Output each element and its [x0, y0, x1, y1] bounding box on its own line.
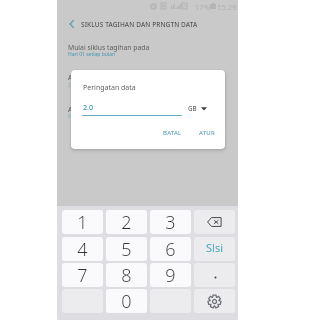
staticText: 9 [165, 263, 176, 287]
button[interactable]: Settings [194, 289, 235, 313]
button[interactable]: ATUR [195, 126, 219, 140]
staticText: Atur peringatan data [68, 73, 135, 82]
staticText: 8 [121, 263, 132, 287]
staticText: 0 [121, 289, 132, 313]
staticText: Hari 01 setiap bulan [68, 51, 116, 58]
staticText: 7 [77, 263, 88, 287]
staticText: 2 [121, 210, 132, 234]
staticText: 3 [165, 210, 176, 234]
button[interactable]: Backspace [194, 210, 235, 234]
staticText: 6 [165, 237, 176, 261]
button[interactable]: 9 [150, 263, 191, 287]
staticText: 2,00 GB [68, 82, 87, 89]
button[interactable]: 6 [150, 237, 191, 261]
staticText: Mulai siklus tagihan pada [68, 43, 150, 52]
staticText: 17% [195, 2, 210, 12]
staticText: SIKLUS TAGIHAN DAN PRNGTN DATA [81, 20, 198, 29]
button[interactable]: 3 [150, 210, 191, 234]
button[interactable]: Back [60, 12, 84, 36]
staticText: 4 [77, 237, 88, 261]
staticText: BATAL [163, 129, 182, 137]
staticText: 5 [121, 237, 132, 261]
button[interactable]: Slsi [194, 237, 235, 261]
staticText: Slsi [206, 240, 223, 255]
button[interactable]: 2 [106, 210, 147, 234]
button[interactable]: 1 [62, 210, 103, 234]
button[interactable]: BATAL [159, 126, 186, 140]
button[interactable]: 4 [62, 237, 103, 261]
button[interactable]: Decimal point [194, 263, 235, 287]
button[interactable]: 0 [106, 289, 147, 313]
staticText: Peringatan data [83, 83, 136, 93]
staticText: 1 [77, 210, 88, 234]
staticText: 2.0 [83, 102, 94, 112]
button[interactable]: 7 [62, 263, 103, 287]
staticText: Nonaktif [68, 113, 89, 120]
staticText: ATUR [199, 129, 215, 137]
staticText: 15:29 [217, 2, 237, 12]
button[interactable]: 8 [106, 263, 147, 287]
button[interactable]: 5 [106, 237, 147, 261]
staticText: Atur batas data [68, 105, 118, 114]
staticText: GB [188, 104, 197, 112]
button[interactable]: GB [188, 104, 207, 112]
